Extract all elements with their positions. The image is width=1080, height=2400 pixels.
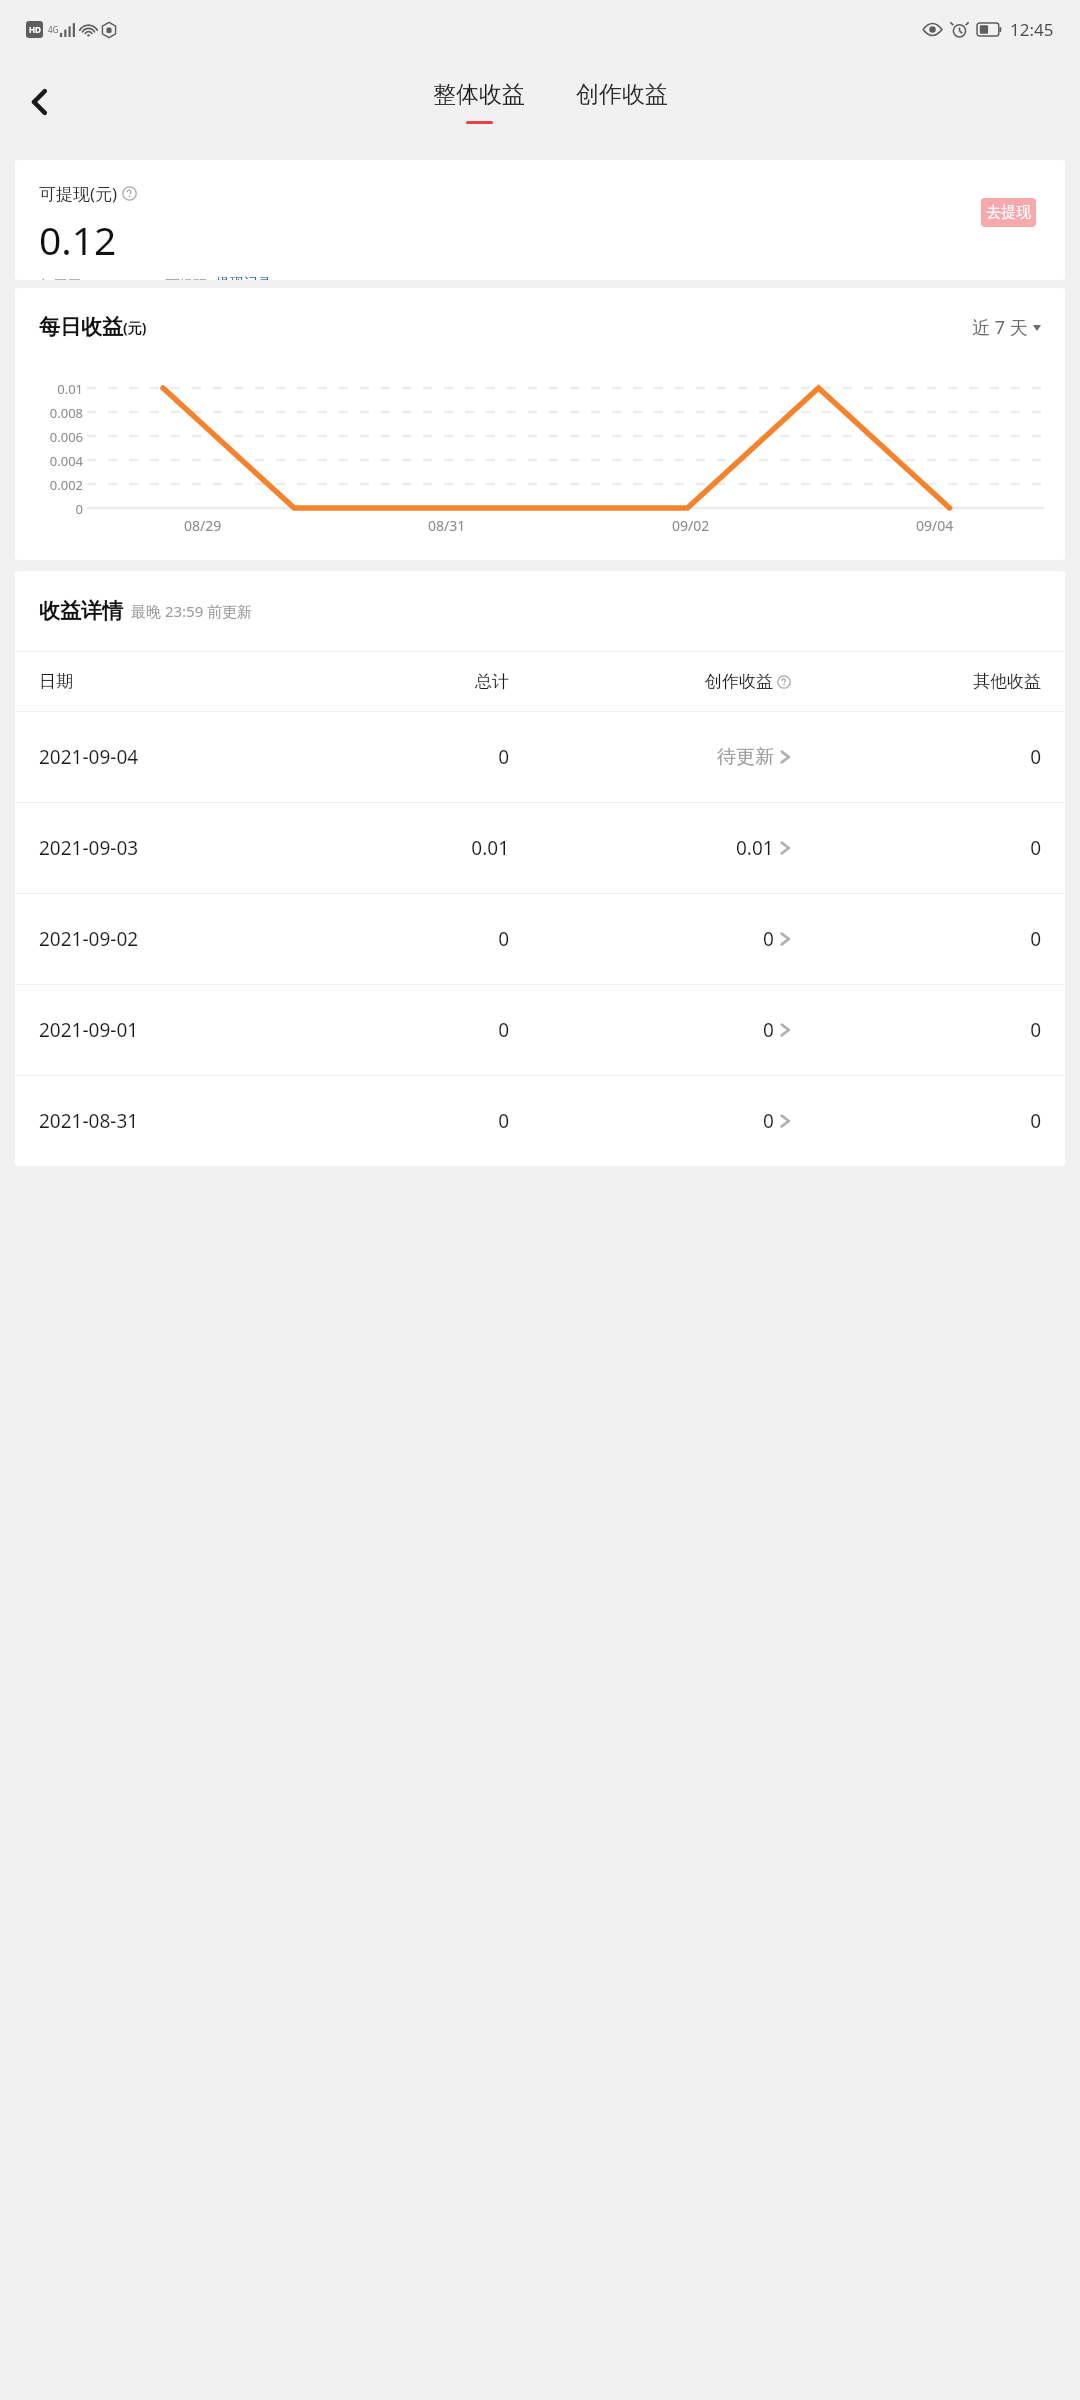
button[interactable]: 2021-09-04 xyxy=(15,712,1065,802)
staticText: 0 xyxy=(791,744,1041,770)
staticText: 0 xyxy=(791,835,1041,861)
staticText: 0 xyxy=(763,926,774,952)
button[interactable]: 创作收益 xyxy=(566,80,678,124)
staticText: 其他收益 xyxy=(791,671,1041,692)
staticText: 0 xyxy=(763,1017,774,1043)
button[interactable]: 近 7 天 xyxy=(972,315,1041,340)
staticText: 0.006 xyxy=(15,428,83,446)
staticText: 0.01 xyxy=(736,835,774,861)
staticText: 2021-09-04 xyxy=(39,744,300,770)
staticText: 每日收益 xyxy=(39,314,123,340)
staticText: 收益详情 xyxy=(39,598,123,624)
staticText: 总计 xyxy=(300,671,509,692)
staticText: 0 xyxy=(763,1108,774,1134)
staticText: 0 xyxy=(300,1108,509,1134)
staticText: 09/02 xyxy=(672,516,710,535)
button[interactable]: 去提现 xyxy=(981,198,1036,227)
button[interactable]: 2021-09-01 xyxy=(15,985,1065,1075)
staticText: 0.008 xyxy=(15,404,83,422)
button[interactable]: 2021-09-03 xyxy=(15,803,1065,893)
staticText: 0.004 xyxy=(15,452,83,470)
staticText: 0 xyxy=(300,744,509,770)
staticText: 0.01 xyxy=(15,380,83,398)
button[interactable]: 2021-08-31 xyxy=(15,1076,1065,1166)
staticText: 整体收益 xyxy=(433,80,525,109)
staticText: 0 xyxy=(791,926,1041,952)
staticText: 去提现 xyxy=(986,203,1031,222)
staticText: 0 xyxy=(15,500,83,518)
staticText: (元) xyxy=(123,318,147,337)
staticText: 待更新 xyxy=(717,745,774,769)
staticText: 0 xyxy=(791,1108,1041,1134)
staticText: 09/04 xyxy=(916,516,954,535)
staticText: 0.002 xyxy=(15,476,83,494)
staticText: 每周四 9:00～23:00 可提现 xyxy=(39,275,208,280)
staticText: 2021-09-01 xyxy=(39,1017,300,1043)
staticText: 12:45 xyxy=(1010,18,1054,41)
button[interactable]: Help xyxy=(122,186,137,201)
staticText: 提现记录 xyxy=(216,275,272,280)
staticText: 0.12 xyxy=(39,213,117,266)
button[interactable]: 整体收益 xyxy=(423,80,535,124)
staticText: 2021-09-03 xyxy=(39,835,300,861)
staticText: 08/29 xyxy=(184,516,222,535)
staticText: 创作收益 xyxy=(705,671,773,692)
button[interactable]: 2021-09-02 xyxy=(15,894,1065,984)
staticText: 可提现(元) xyxy=(39,182,118,205)
staticText: HD xyxy=(29,24,41,35)
staticText: 2021-08-31 xyxy=(39,1108,300,1134)
staticText: 0 xyxy=(300,926,509,952)
staticText: 近 7 天 xyxy=(972,315,1028,340)
staticText: 08/31 xyxy=(428,516,466,535)
button[interactable]: Back xyxy=(12,74,68,130)
staticText: 0 xyxy=(300,1017,509,1043)
staticText: 日期 xyxy=(39,671,300,692)
staticText: 0 xyxy=(791,1017,1041,1043)
staticText: 0.01 xyxy=(300,835,509,861)
button[interactable]: Help xyxy=(777,675,791,689)
button[interactable]: 提现记录 xyxy=(216,275,272,280)
staticText: 创作收益 xyxy=(576,80,668,109)
staticText: 2021-09-02 xyxy=(39,926,300,952)
staticText: 最晚 23:59 前更新 xyxy=(131,601,253,621)
staticText: 4G xyxy=(48,24,59,35)
